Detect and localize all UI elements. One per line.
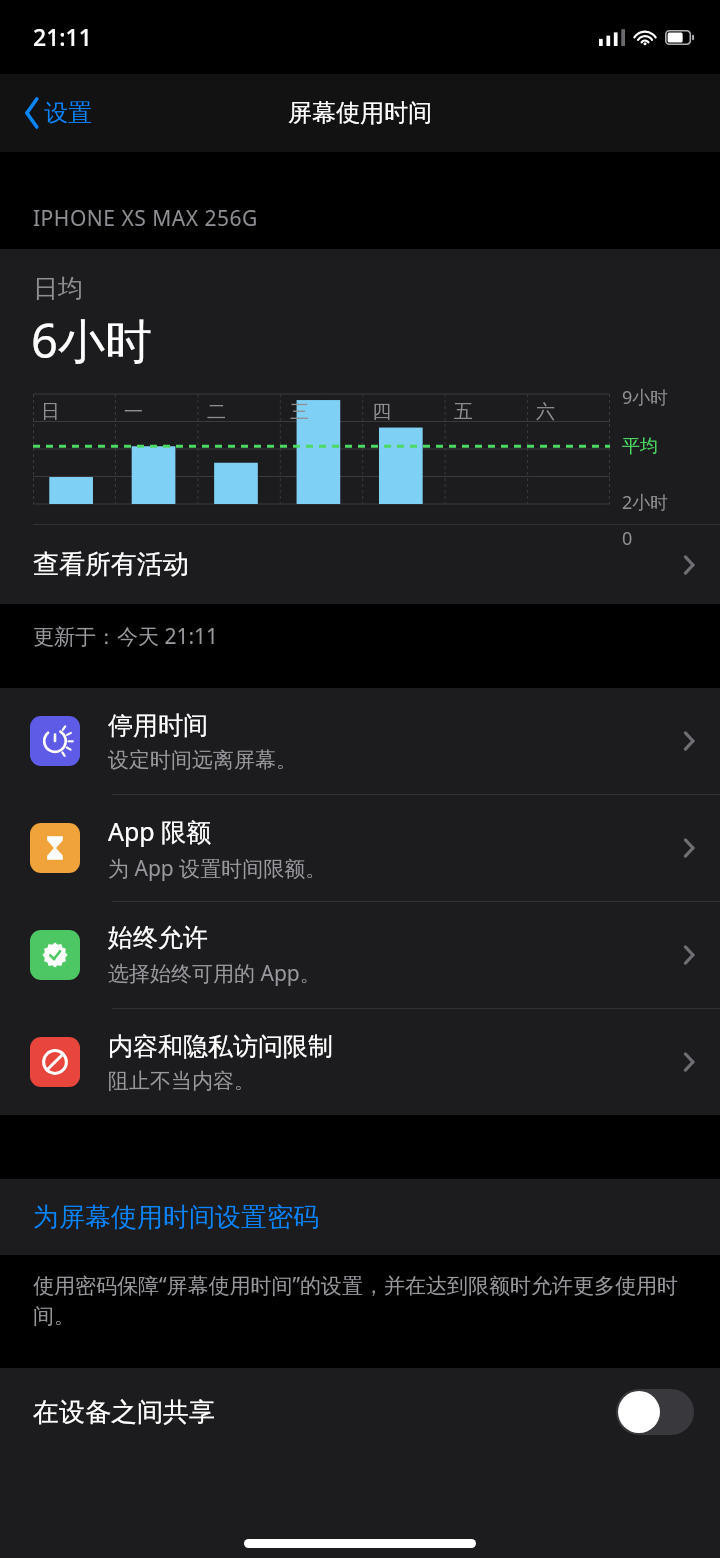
staticText: 日均 bbox=[33, 273, 83, 304]
staticText: 二 bbox=[207, 400, 226, 424]
staticText: 6小时 bbox=[31, 308, 152, 372]
staticText: 内容和隐私访问限制 bbox=[108, 1031, 333, 1062]
button[interactable]: 查看所有活动 bbox=[0, 525, 720, 604]
staticText: 为 App 设置时间限额。 bbox=[108, 854, 327, 883]
staticText: 使用密码保障“屏幕使用时间”的设置，并在达到限额时允许更多使用时间。 bbox=[33, 1271, 692, 1330]
staticText: 屏幕使用时间 bbox=[288, 98, 432, 128]
staticText: 设置 bbox=[44, 98, 92, 128]
staticText: 始终允许 bbox=[108, 922, 208, 953]
staticText: 日 bbox=[41, 400, 60, 424]
button[interactable]: 停用时间 bbox=[0, 688, 720, 795]
staticText: 选择始终可用的 App。 bbox=[108, 959, 321, 988]
staticText: 六 bbox=[536, 400, 555, 424]
staticText: 9小时 bbox=[622, 385, 669, 410]
button[interactable]: 始终允许 bbox=[0, 902, 720, 1009]
staticText: App 限额 bbox=[108, 814, 212, 848]
staticText: IPHONE XS MAX 256G bbox=[33, 204, 258, 233]
button[interactable]: 设置 bbox=[18, 92, 98, 134]
button[interactable]: 为屏幕使用时间设置密码 bbox=[0, 1179, 720, 1255]
button[interactable]: App 限额 bbox=[0, 795, 720, 902]
other: 在设备之间共享开关 bbox=[616, 1389, 694, 1435]
staticText: 在设备之间共享 bbox=[33, 1396, 616, 1429]
staticText: 三 bbox=[290, 400, 309, 424]
staticText: 平均 bbox=[622, 435, 658, 458]
staticText: 停用时间 bbox=[108, 710, 208, 741]
button[interactable]: 在设备之间共享 bbox=[0, 1368, 720, 1456]
staticText: 2小时 bbox=[622, 490, 669, 515]
staticText: 设定时间远离屏幕。 bbox=[108, 747, 297, 773]
staticText: 阻止不当内容。 bbox=[108, 1068, 255, 1094]
staticText: 五 bbox=[454, 400, 473, 424]
staticText: 查看所有活动 bbox=[33, 548, 680, 581]
staticText: 为屏幕使用时间设置密码 bbox=[33, 1201, 319, 1234]
staticText: 一 bbox=[124, 400, 143, 424]
staticText: 0 bbox=[622, 526, 633, 551]
staticText: 四 bbox=[372, 400, 391, 424]
staticText: 更新于：今天 21:11 bbox=[33, 622, 219, 651]
staticText: 21:11 bbox=[33, 21, 92, 52]
button[interactable]: 内容和隐私访问限制 bbox=[0, 1009, 720, 1115]
